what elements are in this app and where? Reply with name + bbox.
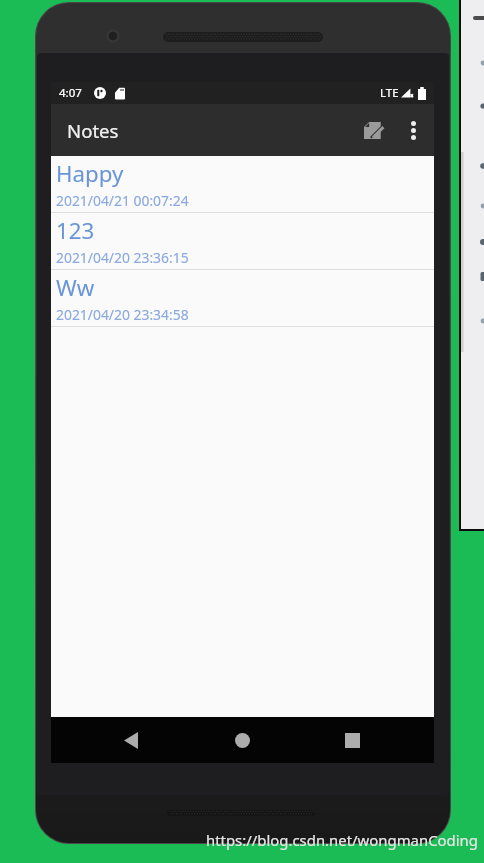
staticText: 2021/04/20 23:36:15 — [56, 248, 189, 267]
staticText: Happy — [56, 158, 124, 188]
staticText: https://blog.csdn.net/wongmanCoding — [206, 830, 478, 850]
button[interactable]: 123 — [51, 213, 434, 270]
button[interactable]: Home — [218, 717, 266, 763]
staticText: Ww — [56, 272, 95, 302]
staticText: 2021/04/21 00:07:24 — [56, 191, 189, 210]
button[interactable]: Back — [107, 717, 155, 763]
staticText: 123 — [56, 215, 95, 245]
button[interactable]: New note — [350, 107, 396, 153]
button[interactable]: More options — [390, 107, 436, 153]
staticText: 2021/04/20 23:34:58 — [56, 305, 189, 324]
staticText: Notes — [67, 118, 119, 143]
button[interactable]: Happy — [51, 156, 434, 213]
button[interactable]: Ww — [51, 270, 434, 327]
staticText: 4:07 — [59, 85, 82, 101]
button[interactable]: Recents — [328, 717, 376, 763]
staticText: LTE — [380, 85, 399, 101]
